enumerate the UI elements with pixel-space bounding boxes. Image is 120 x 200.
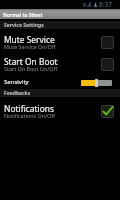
staticText: Sensivity [4,78,29,86]
button[interactable]: Start On Boot [0,52,120,74]
staticText: Start On Boot On/Off [4,65,58,72]
staticText: Notifications [4,103,54,114]
staticText: Mute Service On/Off [4,43,56,50]
staticText: 8:37 [99,0,112,9]
staticText: Normal to Silent [3,12,43,19]
button[interactable]: Unchecked [101,36,114,49]
staticText: Feedbacks [4,90,31,97]
staticText: Start On Boot [4,56,58,67]
staticText: Service Settings [4,22,44,29]
button[interactable]: Sensivity [0,74,120,89]
button[interactable]: Notifications [0,97,120,120]
staticText: Mute Service [4,34,55,45]
button[interactable]: Unchecked [101,58,114,71]
staticText: Notifications On/Off [4,112,55,118]
button[interactable]: Mute Service [0,29,120,52]
button[interactable]: Checked [101,105,114,118]
